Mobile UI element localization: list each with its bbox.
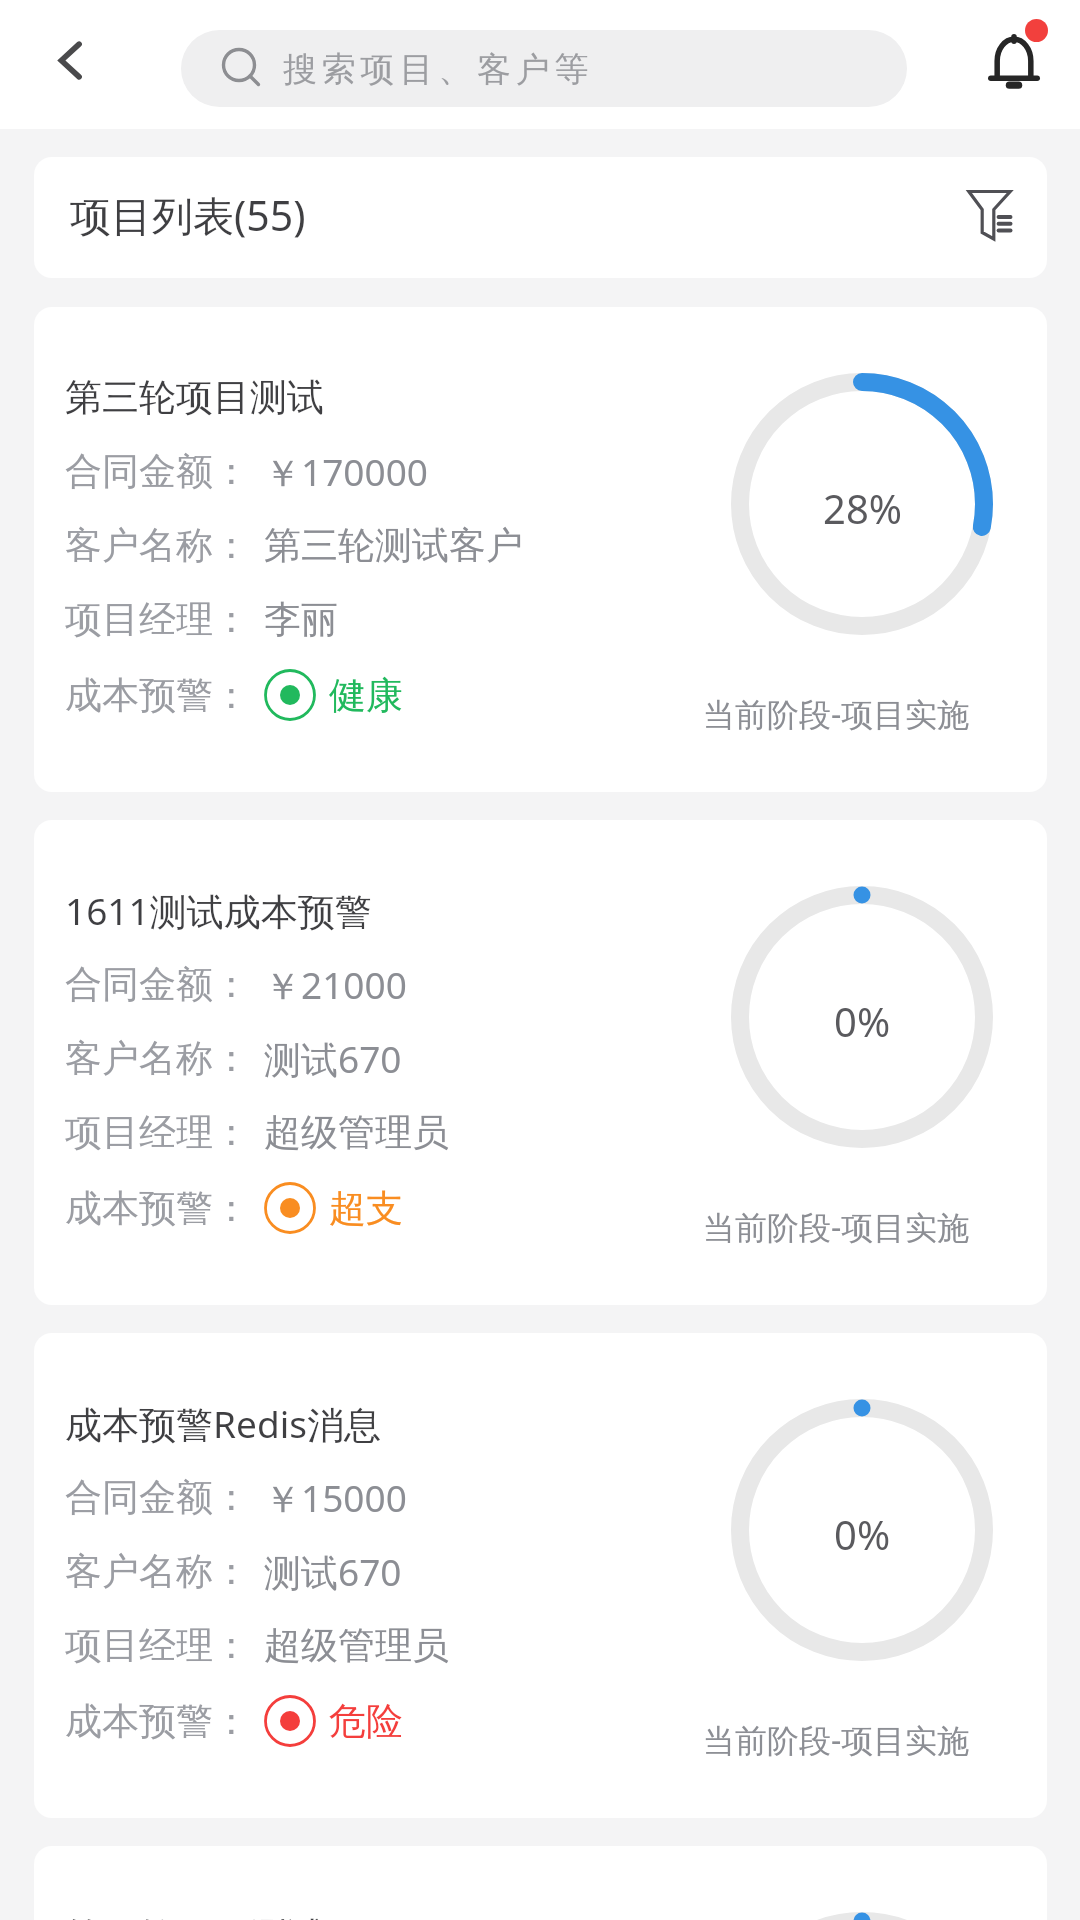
staticText: 28%: [823, 481, 902, 535]
staticText: 成本预警Redis消息: [65, 1398, 381, 1449]
button[interactable]: 搜索项目、客户等: [181, 30, 907, 107]
button[interactable]: 成本预警Redis消息: [34, 1333, 1047, 1818]
staticText: 第三轮测试客户: [264, 522, 523, 569]
staticText: 项目列表(55): [70, 187, 306, 243]
button[interactable]: 第三轮项目测试: [34, 307, 1047, 792]
button[interactable]: Back: [10, 0, 130, 129]
staticText: 项目经理：: [65, 596, 250, 643]
staticText: 成本预警：: [65, 1698, 250, 1745]
staticText: 项目经理：: [65, 1622, 250, 1669]
button[interactable]: 第四轮项目测试: [34, 1846, 1047, 1920]
staticText: 测试670: [264, 1546, 402, 1597]
staticText: 项目经理：: [65, 1109, 250, 1156]
staticText: 合同金额：: [65, 1474, 250, 1521]
button[interactable]: 1611测试成本预警: [34, 820, 1047, 1305]
staticText: 超级管理员: [264, 1109, 449, 1156]
staticText: 成本预警：: [65, 672, 250, 719]
staticText: 第四轮项目测试: [65, 1913, 324, 1920]
staticText: 当前阶段-项目实施: [703, 1718, 970, 1762]
staticText: 客户名称：: [65, 1548, 250, 1595]
staticText: 危险: [329, 1698, 403, 1745]
staticText: 0%: [834, 994, 891, 1048]
staticText: 超支: [329, 1185, 403, 1232]
staticText: 当前阶段-项目实施: [703, 692, 970, 736]
button[interactable]: Filter: [955, 180, 1024, 249]
staticText: 1611测试成本预警: [65, 885, 372, 936]
staticText: 合同金额：: [65, 448, 250, 495]
staticText: 客户名称：: [65, 1035, 250, 1082]
staticText: 当前阶段-项目实施: [703, 1205, 970, 1249]
button[interactable]: Notifications: [945, 0, 1080, 129]
staticText: ￥15000: [264, 1472, 407, 1523]
staticText: 超级管理员: [264, 1622, 449, 1669]
staticText: 搜索项目、客户等: [283, 48, 594, 91]
staticText: 李丽: [264, 596, 338, 643]
button[interactable]: 项目列表(55): [34, 157, 1047, 278]
staticText: 成本预警：: [65, 1185, 250, 1232]
staticText: 第三轮项目测试: [65, 374, 324, 421]
staticText: ￥21000: [264, 959, 407, 1010]
staticText: 测试670: [264, 1033, 402, 1084]
staticText: ￥170000: [264, 446, 428, 497]
staticText: 0%: [834, 1507, 891, 1561]
staticText: 客户名称：: [65, 522, 250, 569]
staticText: 合同金额：: [65, 961, 250, 1008]
staticText: 健康: [329, 672, 403, 719]
